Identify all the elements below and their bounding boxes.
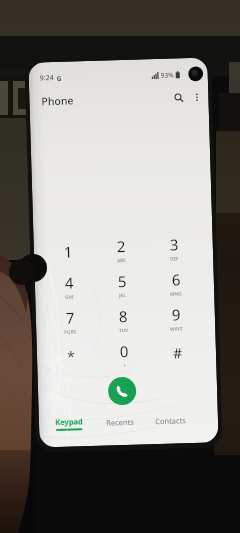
staticText: 6 (171, 269, 181, 290)
button[interactable]: Recents (94, 410, 145, 434)
staticText: Phone (41, 93, 75, 108)
staticText: 0 (120, 341, 129, 361)
staticText: TUV (119, 327, 128, 333)
button[interactable]: * (44, 339, 99, 375)
staticText: Recents (106, 417, 134, 428)
button[interactable]: 6 (148, 266, 202, 302)
staticText: G (57, 74, 62, 83)
button[interactable]: 3 (147, 231, 201, 267)
staticText: 3 (169, 234, 179, 255)
button[interactable]: 7 (42, 304, 97, 340)
staticText: + (123, 362, 126, 368)
staticText: MNO (170, 290, 182, 297)
staticText: DEF (170, 255, 179, 262)
button[interactable]: 9 (149, 301, 203, 337)
staticText: 5 (117, 271, 127, 291)
staticText: 1 (64, 241, 73, 262)
button[interactable]: More options (188, 88, 206, 106)
button[interactable]: 2 (94, 232, 148, 269)
staticText: * (67, 346, 75, 366)
staticText: 93% (161, 70, 174, 80)
staticText: 2 (116, 236, 126, 256)
staticText: GHI (65, 293, 74, 300)
button[interactable]: 1 (40, 234, 95, 270)
staticText: ABC (117, 257, 126, 263)
button[interactable]: 0 (97, 337, 151, 374)
staticText: 7 (66, 307, 75, 328)
staticText: 4 (65, 272, 74, 293)
button[interactable]: 4 (41, 269, 96, 305)
button[interactable]: 8 (96, 302, 150, 339)
staticText: Keypad (55, 416, 83, 427)
staticText: 8 (119, 306, 128, 326)
button[interactable]: Contacts (145, 409, 196, 432)
staticText: # (173, 343, 183, 363)
staticText: WXYZ (170, 325, 183, 332)
button[interactable]: 5 (95, 267, 149, 304)
button[interactable]: Search (170, 89, 188, 106)
button[interactable]: Keypad (44, 412, 94, 435)
staticText: JKL (119, 292, 126, 298)
staticText: PQRS (64, 328, 76, 335)
staticText: Contacts (155, 415, 186, 426)
staticText: 9 (172, 304, 181, 325)
button[interactable]: # (150, 336, 204, 372)
staticText: 9:24 (40, 73, 54, 83)
button[interactable]: Call (108, 377, 136, 405)
